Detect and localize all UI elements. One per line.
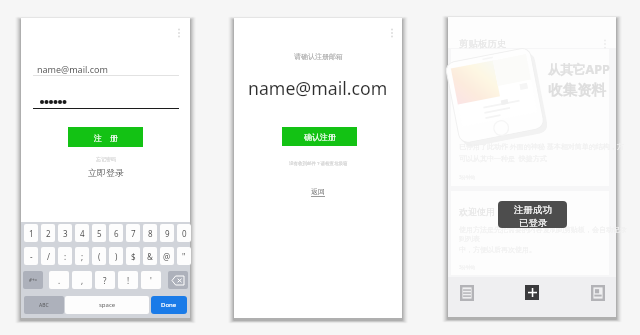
button[interactable]: Add: [499, 277, 565, 317]
button[interactable]: 3: [58, 224, 72, 242]
staticText: 3分钟前: [459, 264, 476, 270]
staticText: -: [30, 251, 33, 262]
staticText: 没有收到邮件？请检查垃圾箱: [289, 161, 348, 167]
button[interactable]: /: [41, 247, 55, 265]
button[interactable]: 9: [160, 224, 174, 242]
staticText: 忘记密码: [96, 156, 116, 162]
button[interactable]: 6: [109, 224, 123, 242]
staticText: /: [47, 251, 50, 262]
button[interactable]: &: [143, 247, 157, 265]
staticText: 从其它APP: [548, 61, 610, 78]
button[interactable]: (: [92, 247, 106, 265]
staticText: 确认注册: [304, 132, 336, 142]
button[interactable]: ABC: [24, 296, 64, 314]
staticText: 8: [148, 228, 153, 239]
button[interactable]: ,: [72, 271, 92, 289]
staticText: 剪贴板历史: [459, 38, 507, 50]
staticText: space: [99, 301, 116, 309]
staticText: 2: [46, 228, 51, 239]
staticText: 立即登录: [88, 167, 124, 178]
button[interactable]: 7: [126, 224, 140, 242]
staticText: ,: [81, 275, 84, 286]
staticText: 9: [165, 228, 170, 239]
staticText: ': [150, 275, 152, 286]
staticText: (: [98, 251, 101, 262]
staticText: :: [64, 251, 67, 262]
button[interactable]: :: [58, 247, 72, 265]
button[interactable]: List: [448, 277, 499, 317]
staticText: 7: [131, 228, 136, 239]
staticText: 返回: [311, 187, 325, 196]
button[interactable]: ): [109, 247, 123, 265]
staticText: 中，方便以后再次使用。: [459, 245, 536, 254]
staticText: !: [127, 275, 130, 286]
staticText: 3: [63, 228, 68, 239]
button[interactable]: 1: [24, 224, 38, 242]
staticText: ABC: [39, 302, 49, 309]
button[interactable]: Done: [151, 296, 187, 314]
button[interactable]: -: [24, 247, 38, 265]
button[interactable]: #+=: [23, 271, 43, 289]
staticText: ?: [103, 275, 107, 286]
button[interactable]: More options: [386, 25, 398, 41]
button[interactable]: 注 册: [68, 127, 143, 147]
staticText: 注册成功: [514, 204, 552, 216]
button[interactable]: Backspace: [168, 271, 188, 289]
staticText: ": [182, 251, 186, 262]
button[interactable]: Gallery: [565, 277, 616, 317]
staticText: 6: [114, 228, 119, 239]
button[interactable]: 立即登录: [21, 167, 190, 178]
button[interactable]: @: [160, 247, 174, 265]
staticText: #+=: [29, 277, 38, 283]
staticText: 5: [97, 228, 102, 239]
button[interactable]: 8: [143, 224, 157, 242]
staticText: &: [147, 251, 153, 262]
staticText: 注 册: [94, 132, 118, 143]
staticText: 使用方法是先把需要的内容复制到剪贴板，会自动记录到列表: [459, 225, 627, 243]
button[interactable]: $: [126, 247, 140, 265]
staticText: 0: [182, 228, 187, 239]
button[interactable]: More options: [600, 37, 610, 51]
staticText: 3分钟前: [459, 174, 476, 180]
button[interactable]: !: [118, 271, 138, 289]
button[interactable]: 4: [75, 224, 89, 242]
staticText: 1: [29, 228, 34, 239]
button[interactable]: 确认注册: [282, 127, 357, 146]
button[interactable]: 返回: [311, 187, 325, 197]
button[interactable]: 2: [41, 224, 55, 242]
staticText: name@mail.com: [37, 63, 108, 75]
button[interactable]: More options: [173, 25, 185, 41]
staticText: ): [115, 251, 118, 262]
staticText: 4: [80, 228, 85, 239]
button[interactable]: 5: [92, 224, 106, 242]
staticText: $: [131, 251, 136, 262]
staticText: 已停用了此动作 外面的神秘 基本相对简单的结构，方: [459, 142, 624, 152]
button[interactable]: .: [49, 271, 69, 289]
staticText: @: [163, 251, 171, 262]
staticText: 收集资料: [548, 81, 606, 99]
staticText: name@mail.com: [248, 76, 388, 100]
button[interactable]: space: [65, 296, 149, 314]
button[interactable]: ?: [95, 271, 115, 289]
button[interactable]: 0: [177, 224, 191, 242]
staticText: .: [58, 275, 61, 286]
button[interactable]: ": [177, 247, 191, 265]
staticText: 欢迎使用: [459, 206, 495, 217]
staticText: 可以从其中一种是 快捷方式: [459, 154, 547, 164]
button[interactable]: ;: [75, 247, 89, 265]
staticText: Done: [161, 301, 177, 309]
staticText: 已登录: [519, 217, 548, 228]
staticText: 请确认注册邮箱: [294, 52, 343, 61]
button[interactable]: ': [141, 271, 161, 289]
staticText: ;: [81, 251, 84, 262]
